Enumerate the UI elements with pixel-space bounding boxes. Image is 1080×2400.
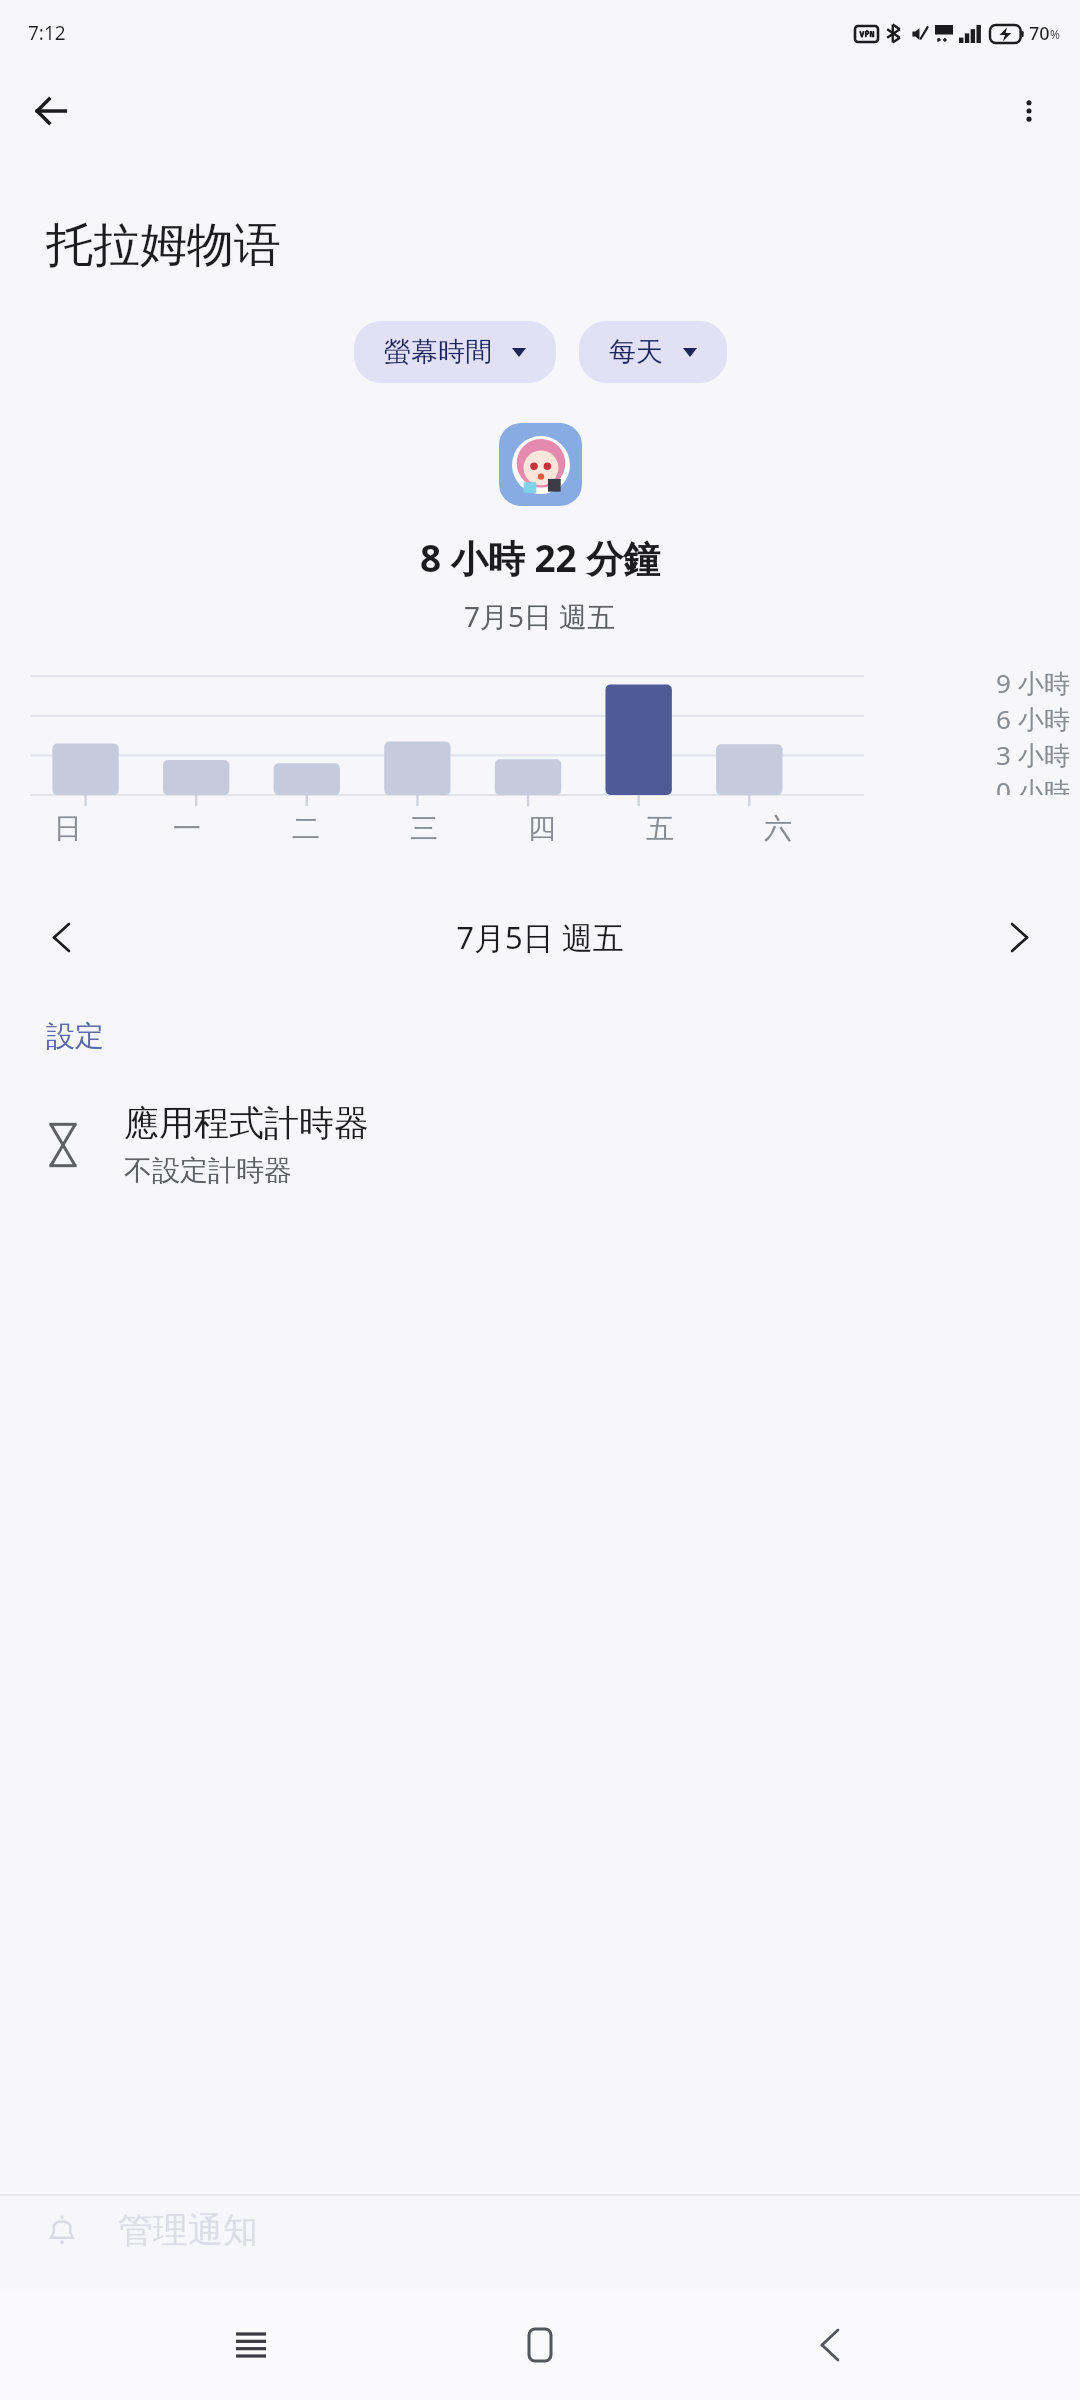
- button[interactable]: 每天: [579, 321, 727, 383]
- staticText: 二: [292, 811, 320, 846]
- staticText: 三: [410, 811, 438, 846]
- staticText: 70: [1029, 21, 1050, 46]
- staticText: 應用程式計時器: [124, 1101, 369, 1145]
- staticText: 7月5日 週五: [464, 597, 616, 635]
- staticText: 一: [173, 811, 201, 846]
- staticText: 9 小時: [996, 665, 1070, 701]
- staticText: 四: [528, 811, 556, 846]
- button[interactable]: More options: [998, 80, 1060, 142]
- button[interactable]: Previous day: [26, 902, 96, 972]
- staticText: %: [1050, 26, 1060, 42]
- staticText: 設定: [46, 1018, 104, 1055]
- button[interactable]: 應用程式計時器: [0, 1091, 1080, 1198]
- button[interactable]: Back: [791, 2306, 869, 2384]
- staticText: 五: [646, 811, 674, 846]
- staticText: 7月5日 週五: [96, 916, 984, 958]
- button[interactable]: Recents: [212, 2306, 290, 2384]
- staticText: 6 小時: [996, 701, 1070, 737]
- button[interactable]: Home: [501, 2306, 579, 2384]
- staticText: 托拉姆物语: [46, 216, 281, 275]
- staticText: 六: [764, 811, 792, 846]
- staticText: 7:12: [28, 20, 66, 46]
- staticText: 0 小時: [996, 773, 1070, 795]
- staticText: 8 小時 22 分鐘: [420, 532, 661, 583]
- staticText: 管理通知: [118, 2208, 258, 2252]
- staticText: 每天: [609, 335, 663, 369]
- staticText: 日: [54, 811, 82, 846]
- button[interactable]: 螢幕時間: [354, 321, 556, 383]
- button[interactable]: Next day: [984, 902, 1054, 972]
- staticText: 3 小時: [996, 737, 1070, 773]
- staticText: 螢幕時間: [384, 335, 492, 369]
- button[interactable]: Back: [20, 80, 82, 142]
- staticText: 不設定計時器: [124, 1153, 292, 1188]
